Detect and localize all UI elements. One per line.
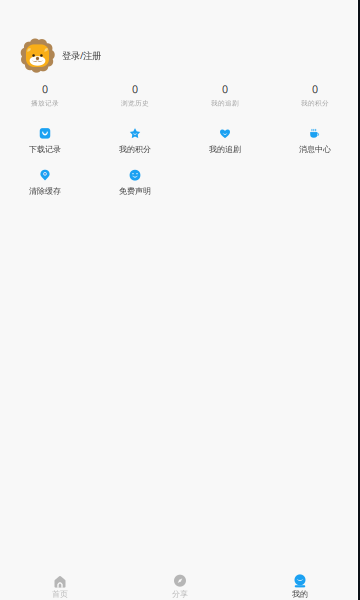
button[interactable]: 免费声明 <box>90 169 180 196</box>
button[interactable]: 0 <box>90 82 180 107</box>
staticText: 0 <box>222 82 228 96</box>
staticText: 0 <box>42 82 48 96</box>
staticText: 我的 <box>292 589 308 599</box>
staticText: 我的积分 <box>119 144 151 154</box>
staticText: 播放记录 <box>31 99 59 107</box>
button[interactable]: 我的积分 <box>90 127 180 154</box>
staticText: 首页 <box>52 589 68 599</box>
button[interactable]: 0 <box>180 82 270 107</box>
staticText: 登录/注册 <box>62 49 101 62</box>
button[interactable]: 分享 <box>120 573 240 599</box>
staticText: 浏览历史 <box>121 99 149 107</box>
staticText: 清除缓存 <box>29 186 61 196</box>
button[interactable]: 我的 <box>240 573 360 599</box>
staticText: 我的追剧 <box>209 144 241 154</box>
button[interactable]: 首页 <box>0 573 120 599</box>
staticText: 分享 <box>172 589 188 599</box>
staticText: 消息中心 <box>299 144 331 154</box>
button[interactable]: 清除缓存 <box>0 169 90 196</box>
staticText: 0 <box>132 82 138 96</box>
staticText: 0 <box>312 82 318 96</box>
button[interactable]: 登录/注册 <box>0 38 360 73</box>
staticText: 我的积分 <box>301 99 329 107</box>
staticText: 免费声明 <box>119 186 151 196</box>
staticText: 下载记录 <box>29 144 61 154</box>
button[interactable]: 消息中心 <box>270 127 360 154</box>
button[interactable]: 0 <box>0 82 90 107</box>
staticText: 我的追剧 <box>211 99 239 107</box>
button[interactable]: 我的追剧 <box>180 127 270 154</box>
button[interactable]: 下载记录 <box>0 127 90 154</box>
button[interactable]: 0 <box>270 82 360 107</box>
